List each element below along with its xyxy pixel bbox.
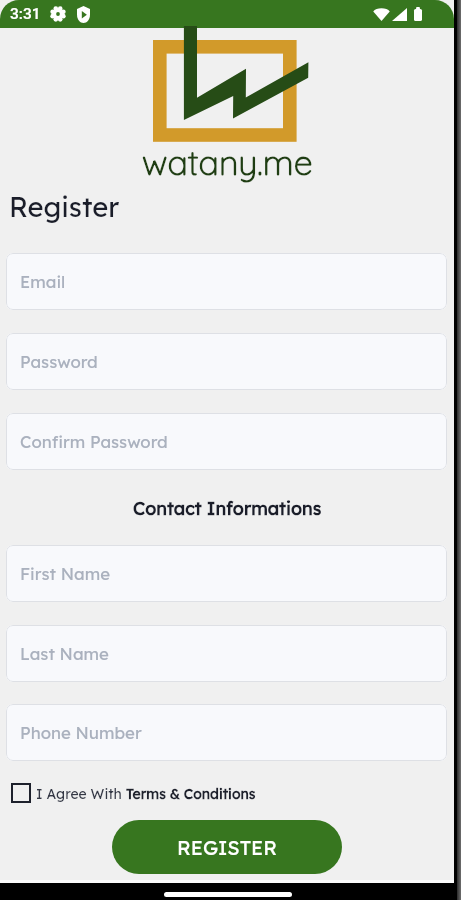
button[interactable]: I agree with terms and conditions [11, 783, 31, 803]
button[interactable]: Phone Number [6, 704, 447, 761]
other: Settings [50, 6, 66, 22]
button[interactable]: Last Name [6, 625, 447, 682]
other: Signal [392, 8, 407, 21]
button[interactable]: REGISTER [112, 820, 342, 874]
staticText: Contact Informations [133, 497, 322, 520]
button[interactable]: Email [6, 253, 447, 310]
staticText: Email [20, 271, 66, 292]
other: Security [77, 6, 90, 23]
staticText: Confirm Password [20, 431, 168, 452]
staticText: I Agree With [36, 785, 126, 802]
button[interactable]: Password [6, 333, 447, 390]
other: Battery [414, 7, 422, 21]
other: Wifi [373, 7, 390, 21]
button[interactable]: First Name [6, 545, 447, 602]
staticText: Phone Number [20, 722, 142, 743]
staticText: First Name [20, 563, 111, 584]
button[interactable]: Confirm Password [6, 413, 447, 470]
staticText: Password [20, 351, 98, 372]
staticText: 3:31 [10, 5, 41, 23]
staticText: watany.me [142, 141, 313, 184]
staticText: Last Name [20, 643, 109, 664]
staticText: Register [9, 190, 120, 224]
button[interactable]: Terms & Conditions [126, 785, 256, 802]
staticText: REGISTER [177, 835, 278, 860]
